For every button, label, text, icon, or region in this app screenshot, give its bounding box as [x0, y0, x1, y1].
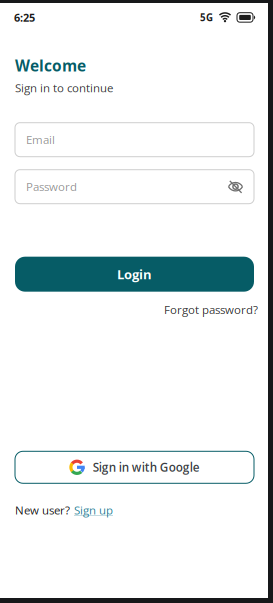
button[interactable]: Email: [15, 123, 254, 157]
staticText: Forgot password?: [164, 302, 258, 317]
staticText: New user?: [15, 502, 70, 518]
button[interactable]: Show password: [228, 180, 243, 194]
button[interactable]: Sign in with Google: [15, 451, 254, 483]
staticText: 5G: [200, 11, 213, 24]
staticText: Password: [26, 179, 77, 194]
button[interactable]: Forgot password?: [164, 302, 258, 317]
button[interactable]: Login: [15, 257, 254, 292]
button[interactable]: Password: [15, 170, 254, 204]
staticText: Sign in to continue: [15, 80, 113, 96]
staticText: 6:25: [14, 10, 35, 25]
staticText: Sign in with Google: [93, 459, 200, 475]
staticText: Login: [117, 265, 152, 283]
staticText: Email: [26, 132, 55, 147]
staticText: Sign up: [74, 502, 113, 518]
staticText: Welcome: [15, 55, 86, 76]
button[interactable]: Sign up: [74, 502, 113, 518]
